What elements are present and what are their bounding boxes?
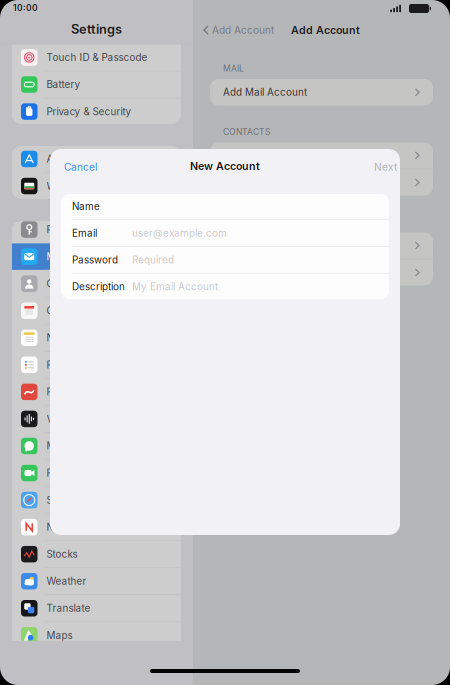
button[interactable]: Add Account <box>199 19 278 41</box>
button[interactable]: Passwords <box>12 216 181 243</box>
staticText: MAIL <box>223 63 244 74</box>
staticText: Add Account <box>291 23 360 36</box>
staticText: Messages <box>46 440 94 452</box>
button[interactable]: Face ID & Passcode <box>12 17 181 44</box>
button[interactable]: Maps <box>12 622 181 649</box>
staticText: user@example.com <box>132 227 227 239</box>
button[interactable]: Calendar <box>12 297 181 324</box>
staticText: New Account <box>190 159 260 172</box>
button[interactable]: Measure <box>12 649 181 676</box>
staticText: My Email Account <box>132 281 218 292</box>
button[interactable]: Password <box>61 247 389 273</box>
button[interactable]: Cancel <box>56 156 105 178</box>
button[interactable]: Privacy & Security <box>12 98 181 125</box>
button[interactable]: Weather <box>12 568 181 594</box>
staticText: Add CalDAV Account <box>223 239 323 251</box>
staticText: Cancel <box>64 161 97 173</box>
staticText: Voice Memos <box>46 413 110 425</box>
button[interactable]: Add Mail Account <box>210 79 433 105</box>
staticText: Stocks <box>46 548 77 560</box>
button[interactable]: FaceTime <box>12 460 181 486</box>
staticText: Add Account <box>212 24 274 36</box>
staticText: Add Mail Account <box>223 86 307 98</box>
staticText: Weather <box>46 575 86 587</box>
button[interactable]: Touch ID & Passcode <box>12 44 181 71</box>
staticText: Name <box>72 200 100 212</box>
staticText: 10:00 <box>13 3 38 13</box>
staticText: News <box>46 521 72 533</box>
button[interactable]: Wallet <box>12 173 181 199</box>
button[interactable]: Add LDAP Account <box>210 142 433 169</box>
staticText: Notes <box>46 332 73 344</box>
staticText: Safari <box>46 494 73 506</box>
button[interactable]: Freeform <box>12 379 181 405</box>
button[interactable]: Safari <box>12 487 181 513</box>
staticText: Required <box>132 254 174 266</box>
button[interactable]: Reminders <box>12 352 181 378</box>
staticText: CALENDARS <box>223 217 273 227</box>
staticText: Battery <box>46 79 80 90</box>
button[interactable]: Email <box>61 220 389 246</box>
staticText: Wallet <box>46 180 74 192</box>
button[interactable]: Stocks <box>12 541 181 567</box>
button[interactable]: Messages <box>12 433 181 459</box>
button[interactable]: Voice Memos <box>12 406 181 432</box>
button[interactable]: News <box>12 514 181 540</box>
button[interactable]: Shortcuts <box>12 676 181 685</box>
staticText: Password <box>72 254 118 266</box>
staticText: Privacy & Security <box>46 106 131 117</box>
staticText: Translate <box>46 602 90 614</box>
button[interactable]: Add CardDAV Account <box>210 169 433 196</box>
button[interactable]: Add CalDAV Account <box>210 232 433 259</box>
staticText: App Store <box>46 153 93 165</box>
staticText: Contacts <box>46 278 88 290</box>
staticText: Freeform <box>46 386 90 398</box>
button[interactable]: Mail <box>12 243 181 270</box>
button[interactable]: Battery <box>12 71 181 98</box>
button[interactable]: Name <box>61 193 389 219</box>
staticText: Reminders <box>46 359 96 371</box>
button[interactable]: Add Subscribed Calendar <box>210 259 433 286</box>
staticText: Calendar <box>46 305 89 317</box>
staticText: Face ID & Passcode <box>46 24 141 36</box>
button[interactable]: Translate <box>12 595 181 621</box>
staticText: Email <box>72 227 97 239</box>
staticText: Passwords <box>46 224 97 235</box>
staticText: Settings <box>71 21 122 37</box>
staticText: Add Subscribed Calendar <box>223 267 344 278</box>
staticText: Touch ID & Passcode <box>46 51 147 63</box>
button[interactable]: Notes <box>12 324 181 351</box>
button[interactable]: Next <box>366 156 405 178</box>
staticText: Maps <box>46 629 72 641</box>
button[interactable]: Description <box>61 273 389 300</box>
button[interactable]: App Store <box>12 146 181 172</box>
staticText: CONTACTS <box>223 127 270 137</box>
staticText: Mail <box>46 251 65 263</box>
button[interactable]: Contacts <box>12 270 181 297</box>
staticText: FaceTime <box>46 467 92 479</box>
staticText: Next <box>374 161 397 173</box>
staticText: Description <box>72 281 125 292</box>
